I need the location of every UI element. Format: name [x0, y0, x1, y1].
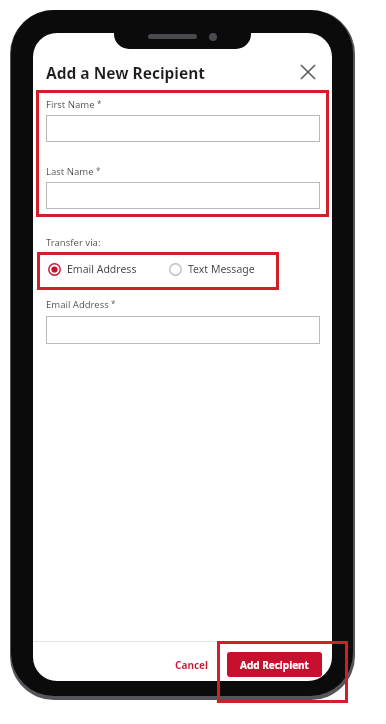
button[interactable]: Add Recipient: [227, 652, 322, 677]
staticText: Text Message: [188, 262, 255, 276]
staticText: Email Address: [46, 298, 109, 311]
staticText: *: [109, 298, 116, 309]
button[interactable]: [46, 316, 320, 344]
staticText: First Name: [46, 98, 95, 111]
button[interactable]: Close: [294, 58, 322, 86]
button[interactable]: Text Message: [167, 260, 257, 278]
button[interactable]: [46, 115, 320, 142]
staticText: *: [95, 98, 102, 109]
button[interactable]: Email Address: [46, 260, 139, 278]
staticText: Transfer via:: [46, 236, 101, 249]
button[interactable]: Cancel: [165, 653, 219, 677]
staticText: Last Name: [46, 165, 94, 178]
button[interactable]: [46, 182, 320, 209]
staticText: *: [94, 165, 101, 176]
staticText: Cancel: [175, 658, 209, 672]
staticText: Add Recipient: [240, 658, 309, 672]
staticText: Add a New Recipient: [46, 62, 206, 83]
staticText: Email Address: [67, 262, 137, 276]
